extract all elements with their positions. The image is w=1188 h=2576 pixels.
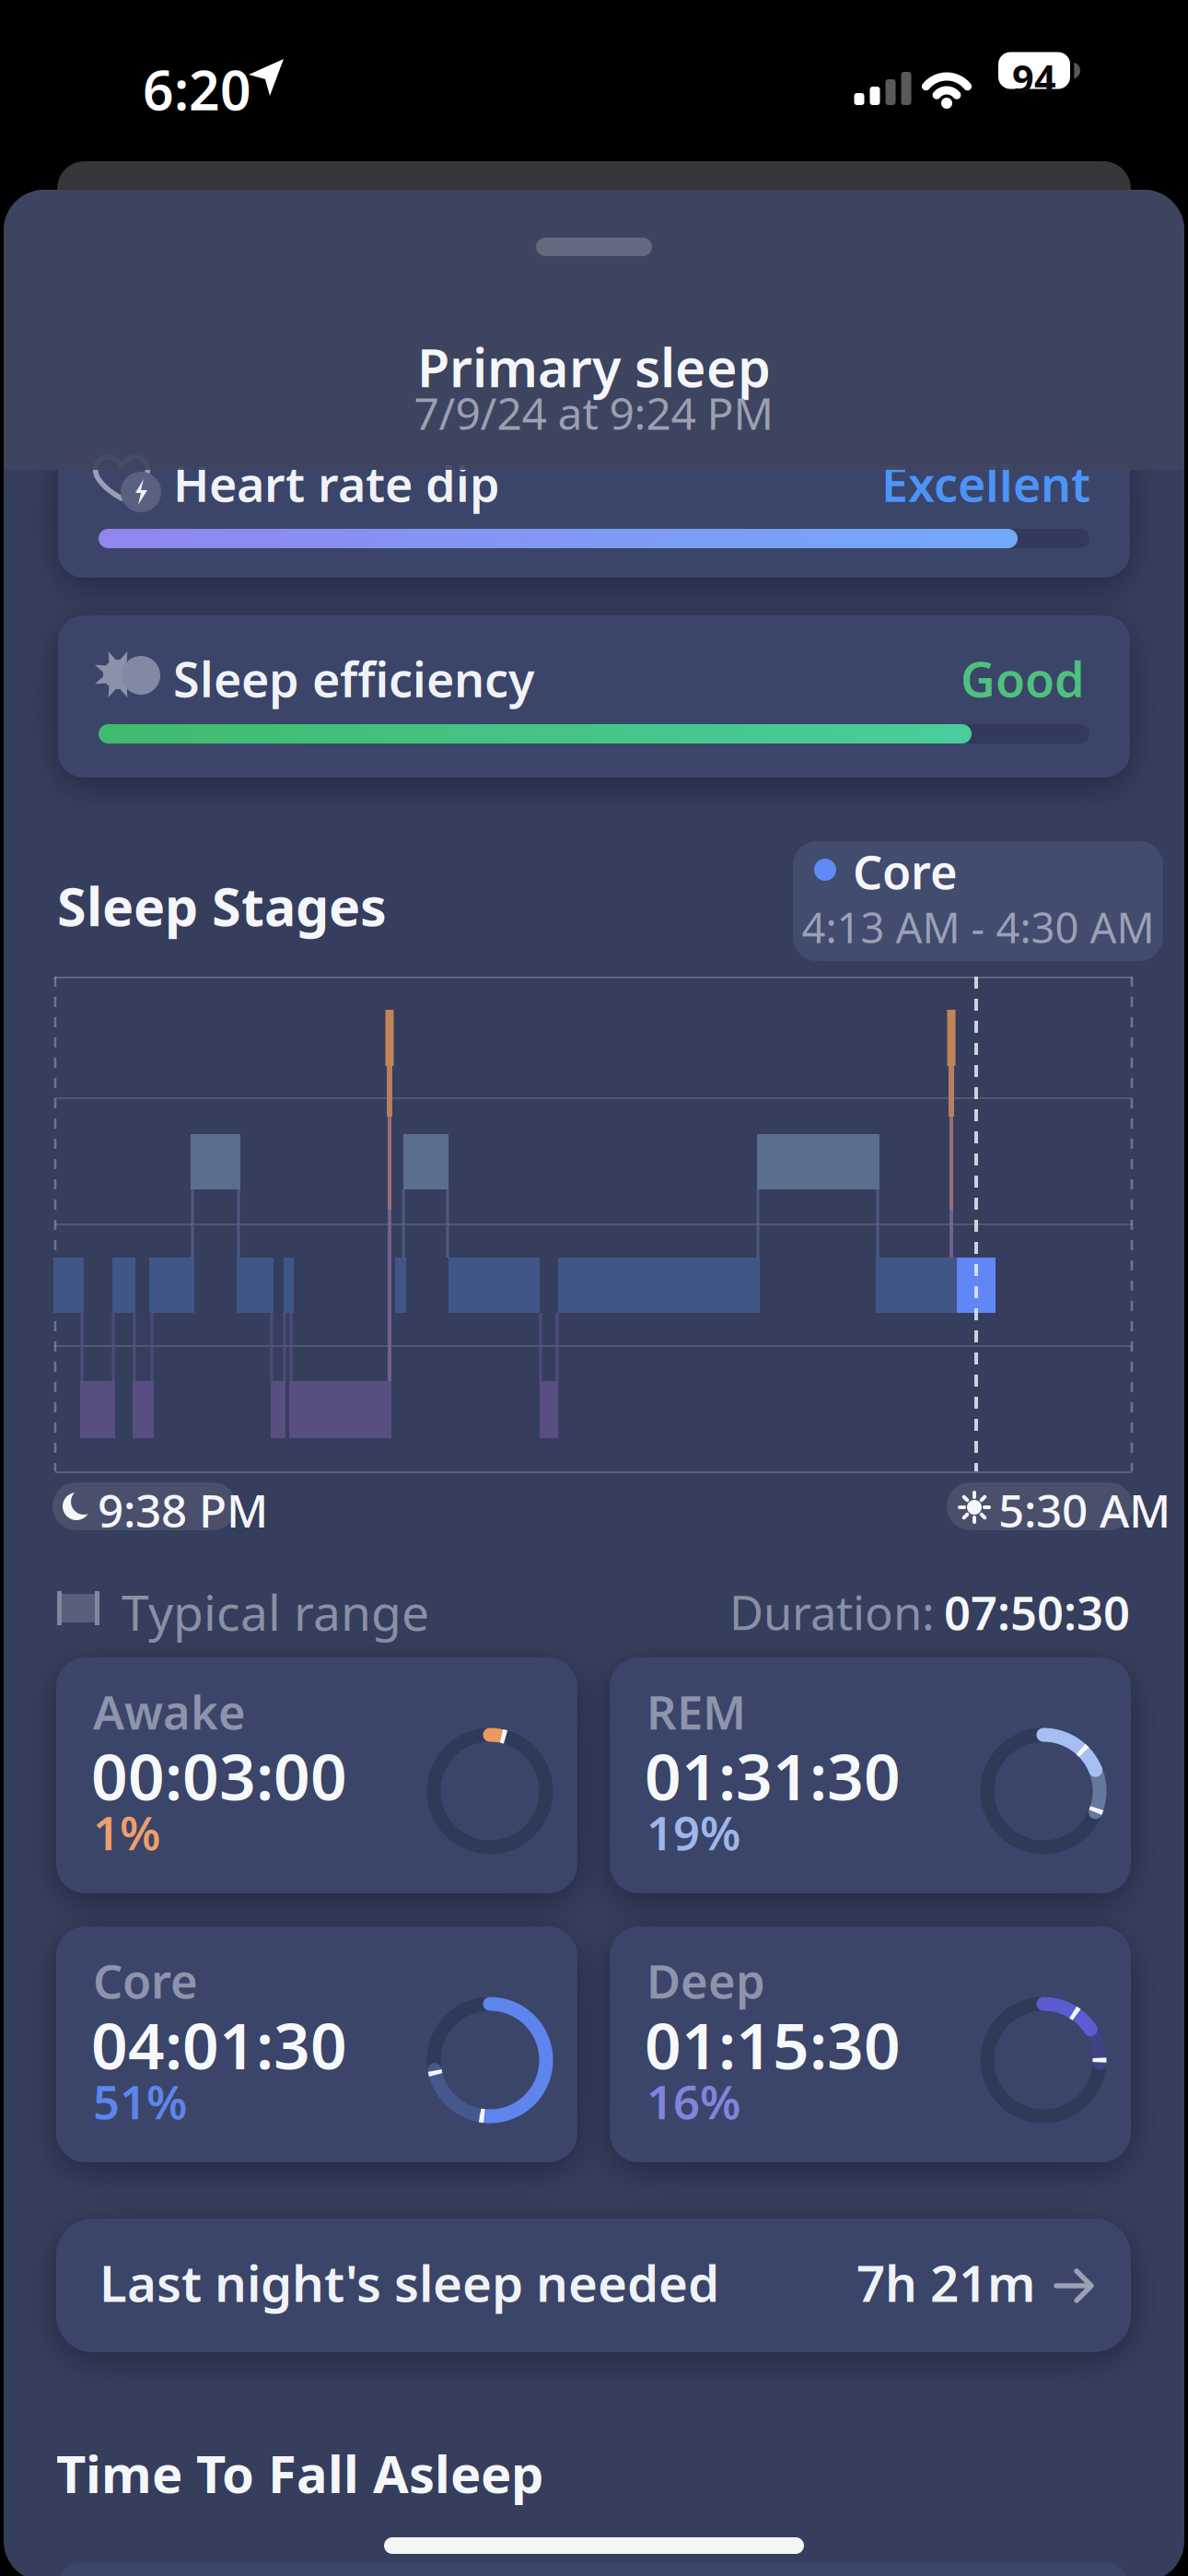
staticText: 01:15:30: [645, 2002, 901, 2087]
staticText: Sleep Stages: [57, 871, 387, 941]
staticText: Sleep efficiency: [173, 647, 534, 710]
button[interactable]: REM: [610, 1657, 1131, 1893]
button[interactable]: Awake: [56, 1657, 577, 1893]
staticText: 19%: [646, 1801, 740, 1863]
staticText: Awake: [93, 1680, 246, 1742]
staticText: 6:20: [143, 53, 251, 125]
staticText: 01:31:30: [645, 1733, 901, 1818]
button[interactable]: Deep: [610, 1926, 1131, 2162]
button[interactable]: Last night's sleep needed: [56, 2219, 1131, 2352]
staticText: Time To Fall Asleep: [56, 2439, 543, 2507]
staticText: 16%: [646, 2070, 740, 2132]
staticText: 1%: [93, 1801, 160, 1863]
staticText: 5:30 AM: [998, 1480, 1171, 1540]
staticText: 7h 21m: [856, 2249, 1035, 2316]
staticText: Core: [853, 840, 958, 902]
staticText: Core: [93, 1950, 198, 2012]
staticText: Duration:: [729, 1581, 935, 1643]
staticText: Deep: [646, 1950, 765, 2012]
staticText: 94: [1012, 53, 1056, 104]
staticText: 04:01:30: [91, 2002, 347, 2087]
staticText: 7/9/24 at 9:24 PM: [414, 383, 774, 442]
staticText: 4:13 AM - 4:30 AM: [802, 899, 1154, 955]
staticText: Good: [961, 647, 1085, 710]
staticText: Excellent: [881, 451, 1090, 515]
staticText: Primary sleep: [417, 332, 771, 402]
staticText: 07:50:30: [944, 1581, 1130, 1643]
staticText: Typical range: [122, 1579, 429, 1644]
staticText: 00:03:00: [91, 1733, 347, 1818]
button[interactable]: Core: [56, 1926, 577, 2162]
staticText: 9:38 PM: [98, 1480, 268, 1540]
staticText: Heart rate dip: [173, 451, 500, 515]
staticText: REM: [646, 1680, 746, 1742]
staticText: 51%: [93, 2070, 187, 2132]
staticText: Last night's sleep needed: [99, 2249, 719, 2316]
